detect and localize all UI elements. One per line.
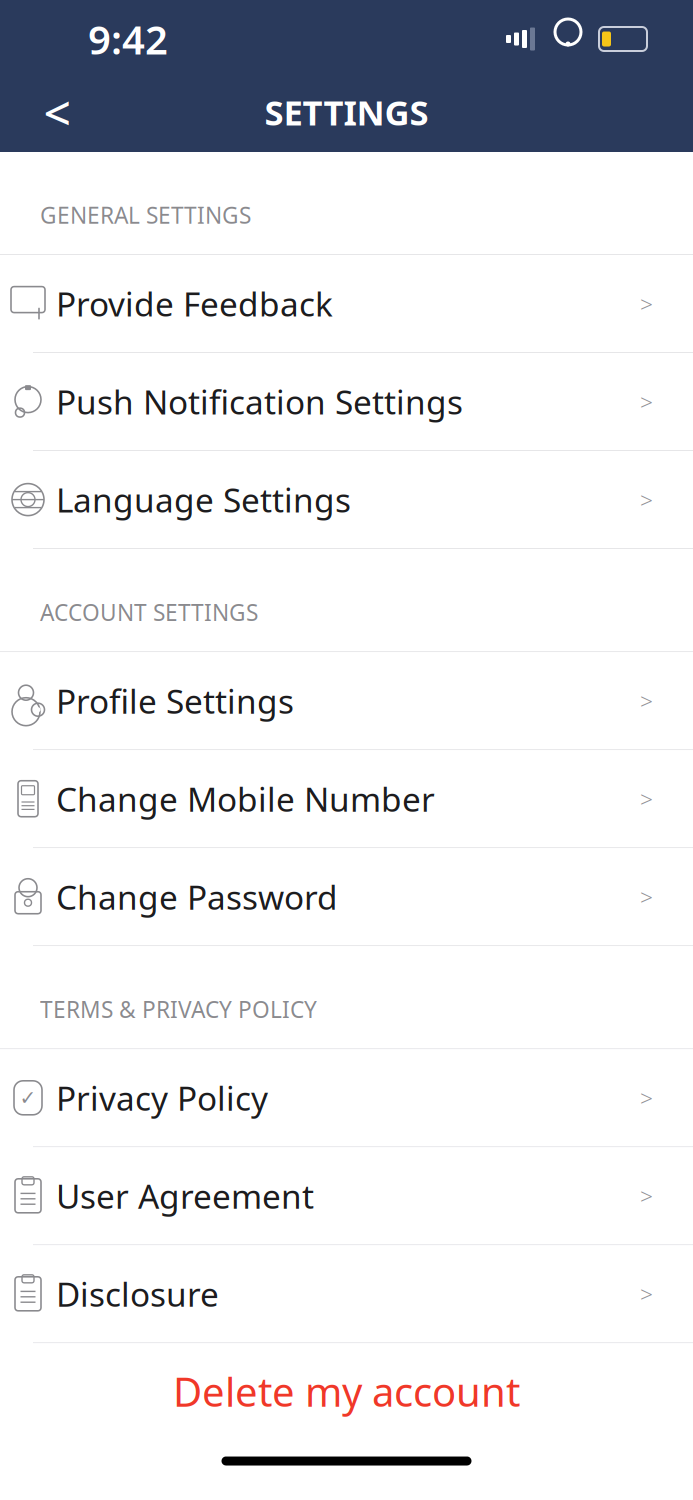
staticText: > (640, 485, 653, 515)
staticText: TERMS & PRIVACY POLICY (40, 994, 317, 1024)
button[interactable]: Profile Settings (0, 652, 693, 750)
button[interactable]: Change Mobile Number (0, 750, 693, 848)
staticText: > (640, 686, 653, 716)
button[interactable]: ✓ (0, 1049, 693, 1147)
staticText: Provide Feedback (56, 281, 333, 326)
staticText: Disclosure (56, 1272, 219, 1316)
staticText: Change Mobile Number (56, 777, 435, 821)
button[interactable]: Disclosure (0, 1245, 693, 1343)
staticText: > (640, 784, 653, 814)
button[interactable]: Provide Feedback (0, 255, 693, 353)
staticText: > (640, 882, 653, 912)
staticText: ACCOUNT SETTINGS (40, 597, 258, 627)
staticText: Push Notification Settings (56, 379, 463, 424)
staticText: Delete my account (173, 1365, 520, 1418)
button[interactable]: Push Notification Settings (0, 353, 693, 451)
staticText: Language Settings (56, 477, 351, 522)
staticText: Privacy Policy (56, 1076, 268, 1120)
staticText: < (43, 80, 70, 144)
staticText: User Agreement (56, 1174, 314, 1218)
staticText: Change Password (56, 875, 338, 919)
staticText: > (640, 1181, 653, 1211)
staticText: Profile Settings (56, 679, 294, 723)
staticText: > (640, 387, 653, 417)
button[interactable]: Change Password (0, 848, 693, 946)
button[interactable]: Language Settings (0, 451, 693, 549)
button[interactable]: Delete my account (0, 1343, 693, 1439)
staticText: ✓ (19, 1086, 36, 1109)
button[interactable]: Back (22, 79, 92, 145)
staticText: GENERAL SETTINGS (40, 200, 251, 230)
staticText: > (640, 289, 653, 319)
staticText: SETTINGS (264, 89, 428, 135)
staticText: > (640, 1279, 653, 1309)
staticText: > (640, 1083, 653, 1113)
button[interactable]: User Agreement (0, 1147, 693, 1245)
staticText: 9:42 (88, 12, 168, 65)
